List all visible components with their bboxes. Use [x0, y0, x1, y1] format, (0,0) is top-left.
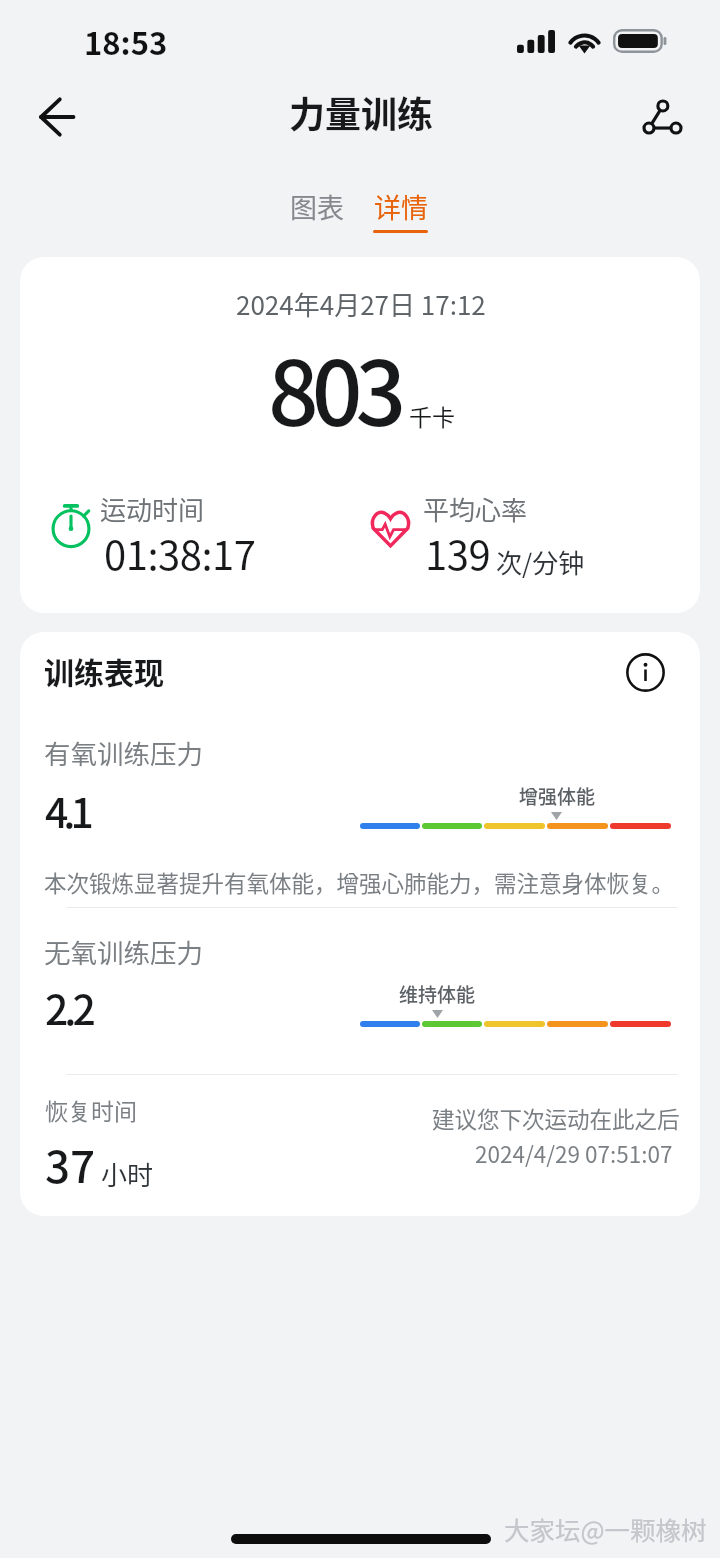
- staticText: 2.2: [45, 977, 92, 1036]
- staticText: 2024年4月27日 17:12: [236, 285, 486, 323]
- staticText: 4.1: [45, 780, 89, 839]
- button[interactable]: Share: [623, 78, 701, 156]
- staticText: 平均心率: [423, 490, 528, 528]
- staticText: 01:38:17: [104, 524, 256, 582]
- staticText: 力量训练: [289, 86, 434, 138]
- staticText: 图表: [290, 187, 344, 226]
- staticText: 37: [45, 1132, 96, 1196]
- staticText: 恢复时间: [45, 1093, 137, 1126]
- staticText: 维持体能: [377, 980, 497, 1008]
- staticText: 有氧训练压力: [44, 733, 203, 771]
- staticText: 增强体能: [497, 782, 617, 810]
- staticText: 2024/4/29 07:51:07: [475, 1137, 673, 1170]
- button[interactable]: Back: [18, 78, 96, 156]
- staticText: 建议您下次运动在此之后: [432, 1102, 680, 1135]
- button[interactable]: 详情: [363, 181, 438, 239]
- staticText: 千卡: [409, 399, 455, 432]
- staticText: 运动时间: [100, 490, 205, 528]
- staticText: 本次锻炼显著提升有氧体能，增强心肺能力，需注意身体恢复。: [44, 866, 675, 899]
- staticText: 803: [268, 323, 400, 452]
- staticText: 小时: [101, 1155, 154, 1193]
- staticText: 无氧训练压力: [44, 932, 203, 970]
- button[interactable]: 图表: [280, 181, 354, 232]
- staticText: 训练表现: [44, 649, 164, 692]
- staticText: 18:53: [84, 19, 168, 64]
- staticText: 大家坛@一颗橡树: [504, 1510, 707, 1547]
- button[interactable]: Info: [617, 644, 673, 700]
- staticText: 139: [425, 524, 491, 582]
- staticText: 详情: [374, 187, 428, 226]
- staticText: 次/分钟: [496, 543, 585, 581]
